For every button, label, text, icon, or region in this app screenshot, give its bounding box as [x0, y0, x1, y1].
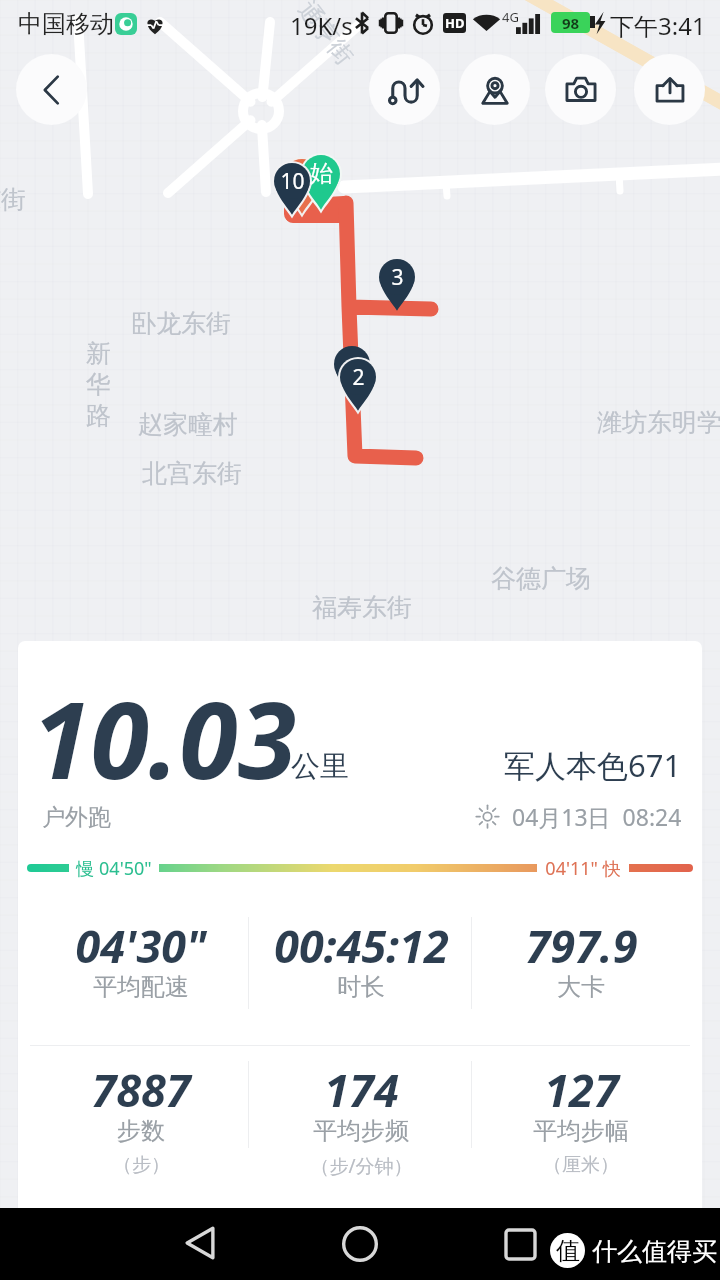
staticText: 赵家疃村 [138, 409, 238, 440]
staticText: 797.9 [525, 915, 638, 976]
staticText: 98 [562, 13, 580, 33]
staticText: HD [445, 14, 465, 32]
staticText: 中国移动 [18, 9, 114, 39]
staticText: 10.03 [32, 666, 297, 810]
staticText: （厘米） [543, 1153, 619, 1177]
button[interactable]: Share [634, 54, 705, 125]
staticText: 04月13日 08:24 [512, 801, 682, 832]
staticText: 通亨街 [292, 0, 360, 71]
staticText: 19K/s [290, 9, 353, 42]
staticText: 值 [556, 1236, 580, 1266]
staticText: 7887 [91, 1059, 191, 1120]
button[interactable]: Camera [545, 54, 616, 125]
staticText: 时长 [337, 972, 385, 1002]
staticText: 谷德广场 [491, 563, 591, 594]
staticText: 福寿东街 [312, 592, 412, 623]
button[interactable]: Home [338, 1222, 382, 1266]
staticText: 平均步幅 [533, 1116, 629, 1146]
staticText: 04'30" [75, 915, 207, 976]
staticText: 什么值得买 [592, 1236, 717, 1267]
staticText: 东街 [0, 184, 26, 215]
staticText: 步数 [117, 1116, 165, 1146]
staticText: 127 [544, 1059, 619, 1120]
staticText: （步） [113, 1153, 170, 1177]
staticText: 04'11" 快 [545, 856, 621, 881]
staticText: 始 [310, 159, 333, 188]
staticText: 潍坊东明学 [597, 407, 720, 438]
button[interactable]: Recents [498, 1222, 542, 1266]
staticText: 户外跑 [42, 803, 111, 832]
button[interactable]: Route map [369, 54, 440, 125]
button[interactable]: Back [178, 1221, 222, 1265]
staticText: 4G [502, 8, 519, 26]
staticText: 2 [352, 363, 365, 392]
staticText: 平均步频 [313, 1116, 409, 1146]
staticText: 新 [86, 338, 111, 369]
button[interactable]: Location [459, 54, 530, 125]
staticText: 174 [324, 1059, 399, 1120]
button[interactable]: Back [16, 54, 87, 125]
staticText: 北宫东街 [142, 458, 242, 489]
staticText: 卧龙东街 [131, 308, 231, 339]
staticText: 00:45:12 [274, 915, 449, 976]
staticText: 3 [391, 263, 404, 292]
staticText: 华 [86, 369, 111, 400]
staticText: 军人本色671 [504, 744, 682, 786]
staticText: 公里 [291, 748, 349, 785]
staticText: 平均配速 [93, 972, 189, 1002]
staticText: 路 [86, 400, 111, 431]
staticText: （步/分钟） [310, 1153, 413, 1179]
staticText: 10 [280, 167, 305, 196]
staticText: 大卡 [557, 972, 605, 1002]
staticText: 慢 04'50" [76, 856, 152, 881]
staticText: 下午3:41 [610, 9, 706, 42]
